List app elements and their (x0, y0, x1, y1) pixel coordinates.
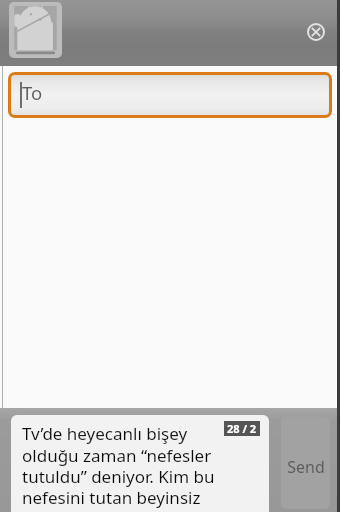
staticText: 28 / 2 (227, 421, 257, 436)
button[interactable]: Send (281, 417, 330, 509)
staticText: Send (287, 456, 325, 478)
button[interactable]: Tv’de heyecanlı bişey olduğu zaman “nefe… (11, 415, 269, 512)
staticText: Tv’de heyecanlı bişey olduğu zaman “nefe… (22, 422, 240, 509)
button[interactable]: Close (306, 22, 326, 42)
button[interactable]: App icon (9, 2, 62, 58)
staticText: To (22, 80, 43, 105)
button[interactable]: To (11, 75, 329, 115)
